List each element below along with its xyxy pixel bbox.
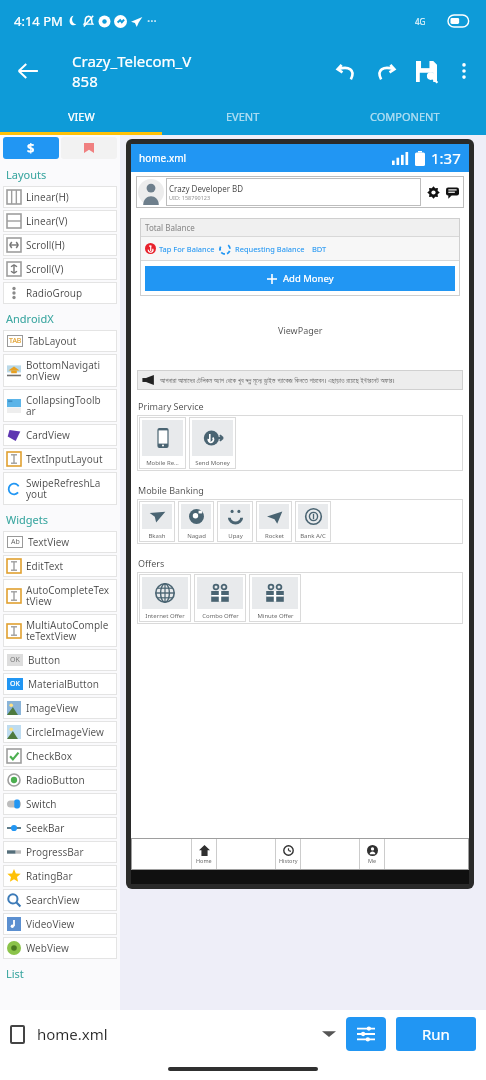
staticText: BottomNavigati onView — [26, 358, 100, 383]
staticText: OK — [10, 679, 20, 689]
button[interactable]: Bkash — [139, 501, 175, 542]
staticText: WebView — [26, 941, 69, 955]
button[interactable]: BottomNavigati onView — [3, 354, 117, 387]
staticText: EditText — [26, 559, 64, 573]
staticText: BDT — [312, 244, 327, 254]
staticText: CheckBox — [26, 749, 72, 763]
staticText: Nagad — [187, 532, 206, 540]
staticText: List — [6, 966, 24, 981]
button[interactable]: Linear(H) — [3, 186, 117, 208]
button[interactable]: Scroll(H) — [3, 234, 117, 256]
staticText: Bkash — [148, 532, 166, 540]
button[interactable]: SearchView — [3, 889, 117, 911]
button[interactable]: Scroll(V) — [3, 258, 117, 280]
staticText: Send Money — [195, 459, 230, 467]
staticText: Add Money — [283, 272, 334, 285]
button[interactable]: ProgressBar — [3, 841, 117, 863]
staticText: AndroidX — [6, 311, 54, 326]
button[interactable]: Favourites — [61, 137, 117, 159]
button[interactable]: Settings — [346, 1017, 386, 1051]
button[interactable]: VIEW — [0, 100, 162, 132]
button[interactable]: SeekBar — [3, 817, 117, 839]
staticText: Ab — [11, 537, 20, 547]
button[interactable]: RatingBar — [3, 865, 117, 887]
staticText: EVENT — [226, 109, 260, 124]
staticText: ··· — [147, 13, 157, 29]
button[interactable]: Tap For Balance — [145, 236, 404, 261]
button[interactable]: TAB — [3, 330, 117, 352]
button[interactable]: Mobile Re… — [139, 417, 186, 469]
button[interactable]: SwipeRefreshLa yout — [3, 472, 117, 505]
button[interactable]: OK — [3, 673, 117, 695]
button[interactable]: Rocket — [256, 501, 292, 542]
button[interactable]: WebView — [3, 937, 117, 959]
button[interactable]: Back — [6, 49, 50, 93]
button[interactable]: Add — [425, 184, 441, 200]
staticText: Layouts — [6, 167, 47, 182]
staticText: TabLayout — [28, 334, 77, 348]
button[interactable]: Upay — [217, 501, 253, 542]
staticText: Linear(H) — [26, 190, 69, 204]
staticText: SeekBar — [26, 821, 65, 835]
button[interactable]: Me — [359, 838, 385, 870]
staticText: MultiAutoComple teTextView — [26, 618, 109, 643]
staticText: SwipeRefreshLa yout — [26, 476, 101, 501]
staticText: TextView — [28, 535, 70, 549]
button[interactable]: EVENT — [162, 100, 324, 132]
button[interactable]: home.xml — [10, 1010, 346, 1058]
staticText: Me — [368, 857, 377, 864]
button[interactable]: CardView — [3, 424, 117, 446]
staticText: RadioGroup — [26, 286, 83, 300]
button[interactable]: More options — [446, 53, 482, 89]
staticText: ViewPager — [278, 324, 323, 336]
staticText: Switch — [26, 797, 57, 811]
staticText: Crazy_Telecom_V — [72, 51, 192, 71]
button[interactable]: ImageView — [3, 697, 117, 719]
staticText: History — [279, 857, 298, 864]
button[interactable]: CircleImageView — [3, 721, 117, 743]
staticText: Scroll(V) — [26, 262, 64, 276]
button[interactable]: RadioGroup — [3, 282, 117, 304]
staticText: $ — [27, 139, 35, 157]
staticText: Bank A/C — [300, 532, 326, 540]
button[interactable]: Undo — [326, 51, 366, 91]
button[interactable]: Crazy Developer BD — [136, 176, 464, 208]
button[interactable]: Home — [191, 838, 217, 870]
staticText: Offers — [138, 557, 165, 569]
button[interactable]: Combo Offer — [194, 574, 246, 622]
button[interactable]: History — [275, 838, 301, 870]
staticText: Tap For Balance — [159, 244, 215, 254]
button[interactable]: Widgets palette — [3, 137, 59, 159]
staticText: Mobile Re… — [146, 459, 179, 467]
staticText: home.xml — [37, 1024, 108, 1044]
button[interactable]: RadioButton — [3, 769, 117, 791]
button[interactable]: EditText — [3, 555, 117, 577]
button[interactable]: Internet Offer — [139, 574, 191, 622]
button[interactable]: Nagad — [178, 501, 214, 542]
button[interactable]: AutoCompleteTex tView — [3, 579, 117, 612]
button[interactable]: OK — [3, 649, 117, 671]
staticText: Linear(V) — [26, 214, 68, 228]
button[interactable]: TextInputLayout — [3, 448, 117, 470]
button[interactable]: Bank A/C — [295, 501, 331, 542]
button[interactable]: COMPONENT — [324, 100, 486, 132]
button[interactable]: Ab — [3, 531, 117, 553]
button[interactable]: Redo — [366, 51, 406, 91]
button[interactable]: Switch — [3, 793, 117, 815]
button[interactable]: MultiAutoComple teTextView — [3, 614, 117, 647]
staticText: TAB — [9, 336, 22, 346]
staticText: Upay — [228, 532, 243, 540]
button[interactable]: VideoView — [3, 913, 117, 935]
button[interactable]: Minute Offer — [249, 574, 301, 622]
staticText: CollapsingToolb ar — [26, 393, 101, 418]
button[interactable]: Run — [396, 1017, 476, 1051]
button[interactable]: Save — [406, 51, 446, 91]
button[interactable]: CollapsingToolb ar — [3, 389, 117, 422]
button[interactable]: Add Money — [145, 266, 455, 291]
button[interactable]: Send Money — [189, 417, 236, 469]
staticText: RadioButton — [26, 773, 85, 787]
button[interactable]: CheckBox — [3, 745, 117, 767]
button[interactable]: Messages — [444, 184, 460, 200]
staticText: Minute Offer — [257, 612, 294, 620]
button[interactable]: Linear(V) — [3, 210, 117, 232]
